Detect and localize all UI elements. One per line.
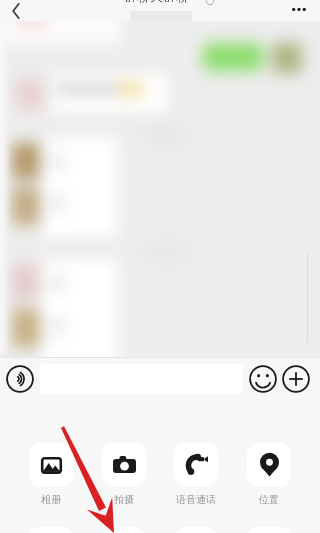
button[interactable]: Back [6,1,26,21]
button[interactable]: Voice input [5,364,35,394]
staticText: 相册 [41,493,61,506]
staticText: 拍摄 [114,493,134,506]
staticText: 位置 [259,493,279,506]
button[interactable]: 位置 [247,443,291,506]
staticText: 群聊天群聊 [124,0,189,4]
button[interactable]: More attachments [102,527,146,533]
button[interactable]: 相册 [29,443,73,506]
button[interactable]: 拍摄 [102,443,146,506]
button[interactable]: More options [288,0,310,21]
button[interactable]: Emoji [248,364,278,394]
button[interactable]: 语音通话 [174,443,218,506]
staticText: 语音通话 [176,493,216,506]
button[interactable]: More functions [281,364,311,394]
